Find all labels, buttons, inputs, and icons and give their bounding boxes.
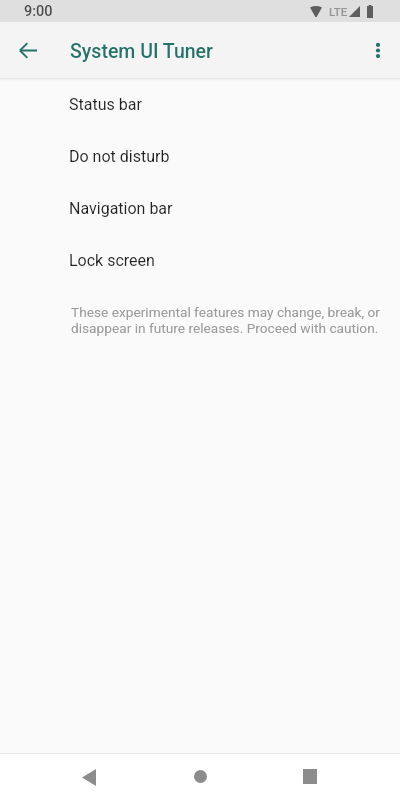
staticText: These experimental features may change, … (71, 304, 384, 336)
button[interactable]: Status bar (0, 78, 400, 130)
staticText: 9:00 (24, 3, 53, 20)
staticText: Navigation bar (69, 199, 173, 218)
button[interactable]: Navigation bar (0, 182, 400, 234)
staticText: Status bar (69, 95, 142, 114)
staticText: Do not disturb (69, 147, 170, 166)
button[interactable]: Navigate up (6, 28, 50, 72)
button[interactable]: Recent apps (288, 755, 332, 799)
button[interactable]: Home (178, 755, 222, 799)
button[interactable]: More options (356, 28, 400, 72)
button[interactable]: Lock screen (0, 234, 400, 286)
staticText: System UI Tuner (70, 40, 213, 63)
button[interactable]: Back (67, 755, 111, 799)
staticText: LTE (329, 5, 348, 18)
button[interactable]: Do not disturb (0, 130, 400, 182)
staticText: Lock screen (69, 251, 155, 270)
